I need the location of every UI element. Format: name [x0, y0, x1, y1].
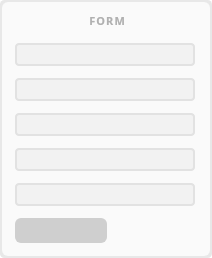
staticText: FORM [89, 13, 126, 28]
button[interactable]: Subject [15, 148, 195, 171]
button[interactable]: Phone [15, 113, 195, 136]
button[interactable]: Submit [15, 218, 107, 243]
button[interactable]: Name [15, 43, 195, 66]
button[interactable]: Email [15, 78, 195, 101]
button[interactable]: Message [15, 183, 195, 206]
